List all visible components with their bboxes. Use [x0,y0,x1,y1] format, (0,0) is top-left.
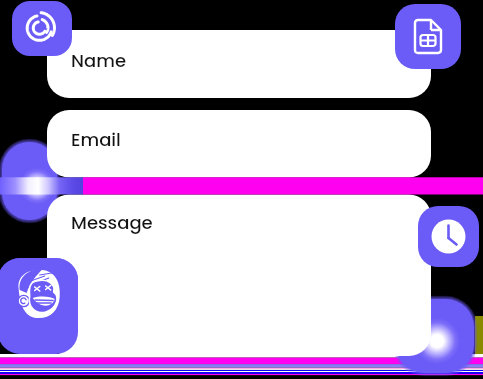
button[interactable]: Clock [418,206,479,267]
button[interactable]: Document [395,4,461,69]
button[interactable]: Name [47,30,431,98]
staticText: Email [71,127,121,152]
staticText: Message [71,210,153,235]
button[interactable]: Refresh [12,1,72,56]
button[interactable]: Email [47,110,431,177]
button[interactable]: Message [47,194,431,356]
button[interactable]: Mailchimp [0,258,78,336]
staticText: Name [71,48,126,73]
